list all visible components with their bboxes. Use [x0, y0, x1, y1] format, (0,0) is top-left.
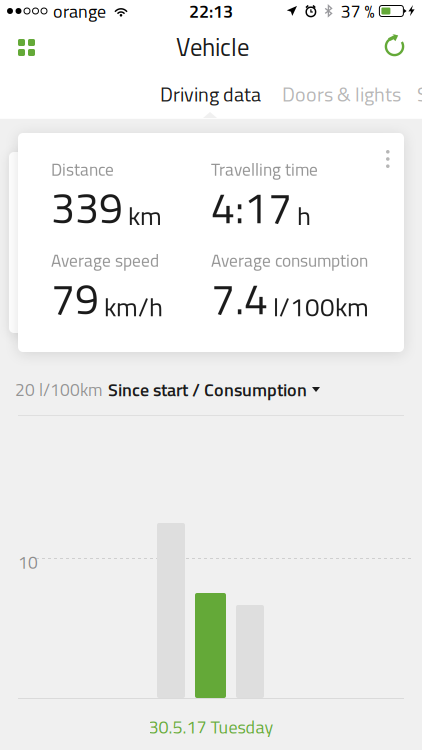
staticText: 7.4	[211, 266, 268, 331]
staticText: Supplementary	[417, 79, 422, 109]
staticText: Travelling time	[211, 156, 318, 182]
staticText: Average consumption	[211, 247, 368, 273]
staticText: Driving data	[160, 79, 261, 109]
staticText: 30.5.17 Tuesday	[148, 713, 273, 740]
staticText: Vehicle	[176, 28, 249, 65]
button[interactable]: Doors & lights	[274, 66, 409, 122]
button[interactable]: Menu	[8, 29, 45, 66]
staticText: Doors & lights	[282, 79, 401, 109]
staticText: km/h	[104, 287, 163, 326]
button[interactable]: Driving data	[152, 66, 269, 122]
staticText: l/100km	[273, 287, 369, 326]
button[interactable]: Supplementary	[409, 66, 422, 122]
staticText: Distance	[51, 156, 114, 182]
button[interactable]: Since start / Consumption	[102, 376, 320, 403]
staticText: 4:17	[211, 175, 292, 240]
staticText: 22:13	[189, 0, 233, 25]
staticText: Average speed	[51, 247, 159, 273]
staticText: 79	[51, 266, 99, 331]
staticText: h	[297, 196, 311, 235]
staticText: 20 l/100km	[15, 376, 102, 403]
staticText: 339	[51, 175, 123, 240]
button[interactable]: Refresh	[374, 25, 415, 66]
staticText: orange	[53, 0, 106, 25]
staticText: Since start / Consumption	[108, 376, 307, 403]
staticText: 10	[18, 549, 38, 575]
staticText: 37 %	[340, 0, 374, 25]
staticText: km	[128, 196, 162, 235]
